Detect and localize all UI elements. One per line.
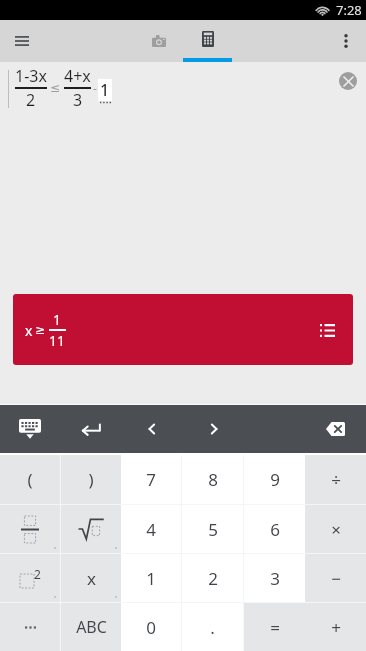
button[interactable]: ): [61, 455, 121, 504]
staticText: 7:28: [336, 1, 362, 19]
staticText: 1: [146, 567, 156, 590]
staticText: 2: [26, 89, 36, 111]
button[interactable]: 2: [182, 554, 243, 602]
button[interactable]: Move left: [130, 405, 174, 453]
staticText: ×: [331, 518, 341, 541]
button[interactable]: Menu: [0, 20, 44, 62]
staticText: 2: [208, 567, 218, 590]
button[interactable]: Backspace: [313, 407, 357, 451]
button[interactable]: 4: [121, 505, 181, 553]
button[interactable]: 7: [121, 455, 181, 504]
button[interactable]: Calculator: [183, 20, 232, 62]
button[interactable]: 1: [121, 554, 181, 602]
button[interactable]: More options: [326, 20, 366, 62]
staticText: ABC: [76, 616, 107, 638]
button[interactable]: Enter: [69, 405, 113, 453]
button[interactable]: ×: [305, 505, 366, 553]
staticText: 4+x: [64, 65, 91, 87]
staticText: 7: [146, 468, 156, 491]
button[interactable]: ABC: [61, 603, 121, 651]
staticText: .: [210, 616, 215, 639]
button[interactable]: 2: [0, 554, 60, 602]
button[interactable]: 5: [182, 505, 243, 553]
button[interactable]: 9: [244, 455, 305, 504]
staticText: 8: [208, 468, 218, 491]
staticText: 6: [270, 518, 280, 541]
staticText: ≤: [50, 81, 61, 95]
button[interactable]: [61, 505, 121, 553]
button[interactable]: Show steps: [314, 317, 340, 343]
staticText: −: [331, 567, 341, 590]
button[interactable]: [0, 505, 60, 553]
staticText: 3: [73, 89, 83, 111]
button[interactable]: +: [305, 603, 366, 651]
staticText: =: [270, 616, 280, 639]
button[interactable]: ÷: [305, 455, 366, 504]
staticText: 4: [146, 518, 156, 541]
button[interactable]: [0, 603, 60, 651]
button[interactable]: 8: [182, 455, 243, 504]
staticText: 1: [53, 310, 62, 329]
staticText: 11: [49, 331, 66, 350]
staticText: ): [88, 468, 94, 491]
staticText: 5: [208, 518, 218, 541]
button[interactable]: x: [13, 294, 353, 365]
button[interactable]: 0: [121, 603, 181, 651]
staticText: (: [27, 468, 33, 491]
button[interactable]: Hide keyboard: [8, 405, 52, 453]
staticText: 2: [34, 566, 41, 582]
button[interactable]: −: [305, 554, 366, 602]
staticText: 3: [270, 567, 280, 590]
staticText: 1: [100, 79, 110, 101]
staticText: +: [331, 616, 341, 639]
button[interactable]: Move right: [192, 405, 236, 453]
button[interactable]: (: [0, 455, 60, 504]
button[interactable]: =: [244, 603, 305, 651]
staticText: 1-3x: [15, 65, 47, 87]
button[interactable]: 6: [244, 505, 305, 553]
staticText: 9: [270, 468, 280, 491]
staticText: -: [93, 80, 97, 96]
staticText: ÷: [331, 468, 341, 491]
button[interactable]: x: [61, 554, 121, 602]
button[interactable]: Clear: [339, 72, 357, 90]
staticText: ≥: [35, 323, 46, 337]
button[interactable]: Camera: [134, 20, 183, 62]
staticText: 0: [146, 616, 156, 639]
button[interactable]: 3: [244, 554, 305, 602]
staticText: x: [25, 321, 33, 340]
staticText: x: [87, 567, 96, 590]
button[interactable]: .: [182, 603, 243, 651]
